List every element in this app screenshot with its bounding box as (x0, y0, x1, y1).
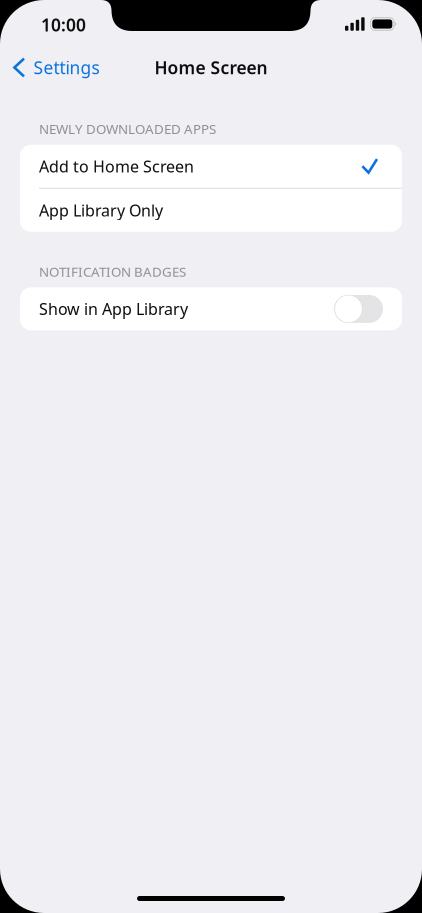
staticText: NEWLY DOWNLOADED APPS (39, 120, 216, 138)
button[interactable]: Show in App Library (20, 287, 402, 330)
staticText: Home Screen (154, 56, 267, 79)
staticText: Show in App Library (39, 298, 188, 319)
staticText: 10:00 (41, 13, 86, 36)
staticText: App Library Only (39, 200, 163, 221)
staticText: NOTIFICATION BADGES (39, 263, 186, 280)
staticText: Settings (33, 56, 99, 79)
button[interactable]: Show in App Library (334, 295, 383, 323)
staticText: Add to Home Screen (39, 156, 194, 177)
button[interactable]: App Library Only (20, 189, 402, 232)
button[interactable]: Add to Home Screen (20, 145, 402, 188)
button[interactable]: Settings (0, 51, 99, 84)
